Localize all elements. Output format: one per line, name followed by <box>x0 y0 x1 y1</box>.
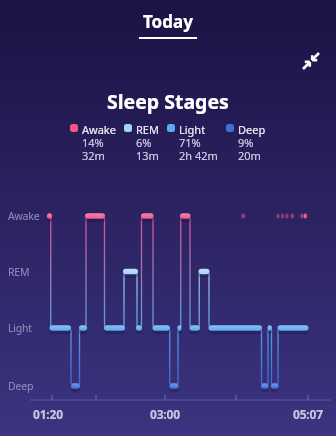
staticText: Deep <box>8 379 34 393</box>
button[interactable]: REM 6% 13m <box>124 122 159 163</box>
staticText: 01:20 <box>33 406 63 422</box>
staticText: Sleep Stages <box>107 88 229 115</box>
button[interactable] <box>301 51 321 71</box>
button[interactable]: Light 71% 2h 42m <box>167 122 218 163</box>
staticText: Light <box>8 321 32 335</box>
staticText: Deep 9% 20m <box>238 122 266 163</box>
staticText: Light 71% 2h 42m <box>179 122 218 163</box>
staticText: 05:07 <box>293 406 323 422</box>
staticText: 03:00 <box>150 406 180 422</box>
staticText: Today <box>143 10 193 33</box>
button[interactable]: Today <box>139 10 197 39</box>
staticText: REM <box>8 265 30 279</box>
staticText: Awake <box>8 209 40 223</box>
button[interactable]: Deep 9% 20m <box>226 122 266 163</box>
button[interactable]: Awake 14% 32m <box>70 122 116 163</box>
staticText: Awake 14% 32m <box>82 122 116 163</box>
staticText: REM 6% 13m <box>136 122 159 163</box>
